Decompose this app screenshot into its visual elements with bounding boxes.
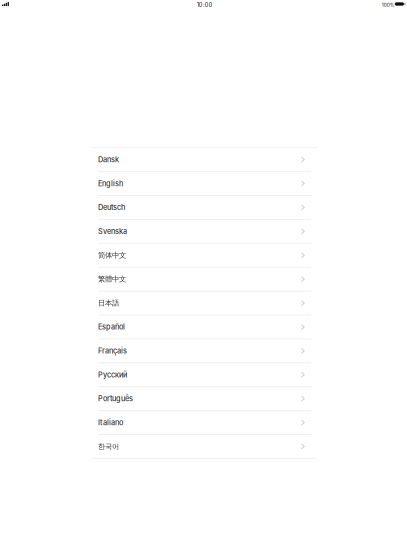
staticText: Français <box>98 346 127 355</box>
staticText: 繁體中文 <box>98 274 126 284</box>
button[interactable]: 日本語 <box>91 291 317 315</box>
staticText: 简体中文 <box>98 251 126 260</box>
staticText: 한국어 <box>98 442 119 451</box>
button[interactable]: Español <box>91 315 317 338</box>
button[interactable]: Русский <box>91 363 317 386</box>
button[interactable]: Français <box>91 339 317 362</box>
button[interactable]: 简体中文 <box>91 244 317 267</box>
button[interactable]: Dansk <box>91 148 317 171</box>
staticText: Italiano <box>98 418 123 427</box>
staticText: 10:00 <box>197 2 213 8</box>
button[interactable]: Português <box>91 387 317 410</box>
staticText: 日本語 <box>98 298 119 308</box>
button[interactable]: English <box>91 172 317 195</box>
button[interactable]: Italiano <box>91 411 317 434</box>
staticText: English <box>98 179 123 188</box>
staticText: Svenska <box>98 227 127 236</box>
staticText: Deutsch <box>98 203 125 212</box>
button[interactable]: 한국어 <box>91 435 317 458</box>
staticText: Español <box>98 322 125 331</box>
staticText: Русский <box>98 370 127 379</box>
button[interactable]: 繁體中文 <box>91 268 317 291</box>
staticText: 100% <box>382 2 395 8</box>
staticText: Dansk <box>98 155 119 164</box>
button[interactable]: Svenska <box>91 220 317 243</box>
button[interactable]: Deutsch <box>91 196 317 219</box>
staticText: Português <box>98 394 133 403</box>
